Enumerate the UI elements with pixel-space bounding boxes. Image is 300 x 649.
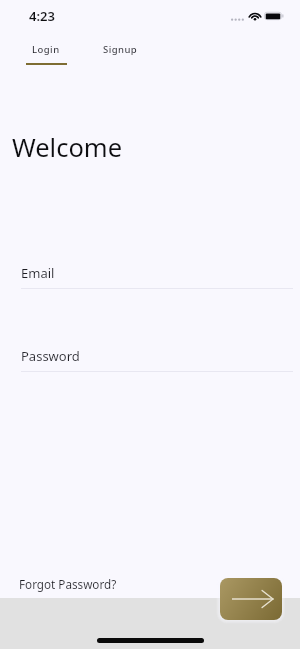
button[interactable]: Forgot Password?: [11, 572, 125, 596]
button[interactable]: Login: [24, 43, 68, 65]
button[interactable]: Signup: [95, 43, 146, 56]
staticText: Signup: [103, 43, 138, 56]
staticText: Welcome: [12, 130, 123, 165]
staticText: Email: [21, 264, 55, 282]
button[interactable]: Password: [0, 347, 300, 372]
staticText: Login: [32, 43, 60, 56]
button[interactable]: Email: [0, 264, 300, 289]
staticText: Forgot Password?: [19, 576, 117, 592]
staticText: 4:23: [29, 7, 55, 25]
staticText: Password: [21, 347, 80, 365]
button[interactable]: Continue: [220, 578, 282, 620]
